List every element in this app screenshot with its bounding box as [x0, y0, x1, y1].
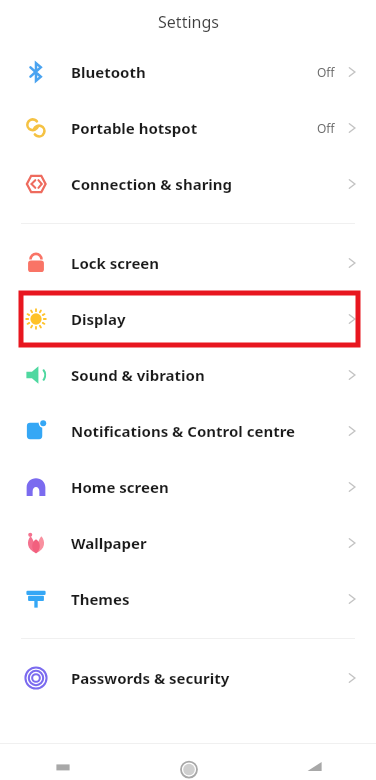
staticText: Display	[71, 309, 126, 329]
staticText: Bluetooth	[71, 62, 146, 82]
staticText: Notifications & Control centre	[71, 421, 295, 441]
button[interactable]: Bluetooth	[0, 44, 376, 100]
button[interactable]: Lock screen	[0, 235, 376, 291]
button[interactable]: Back	[251, 744, 376, 780]
button[interactable]: Home	[126, 744, 251, 780]
staticText: Connection & sharing	[71, 174, 233, 194]
button[interactable]: Recent apps	[0, 744, 126, 780]
button[interactable]: Home screen	[0, 459, 376, 515]
button[interactable]: Portable hotspot	[0, 100, 376, 156]
staticText: Sound & vibration	[71, 365, 205, 385]
button[interactable]: Passwords & security	[0, 650, 376, 706]
staticText: Wallpaper	[71, 533, 147, 553]
button[interactable]: Wallpaper	[0, 515, 376, 571]
staticText: Themes	[71, 589, 130, 609]
staticText: Portable hotspot	[71, 118, 198, 138]
staticText: Home screen	[71, 477, 169, 497]
button[interactable]: Themes	[0, 571, 376, 627]
button[interactable]: Notifications & Control centre	[0, 403, 376, 459]
staticText: Off	[317, 64, 335, 80]
staticText: Settings	[158, 11, 219, 33]
staticText: Passwords & security	[71, 668, 230, 688]
button[interactable]: Sound & vibration	[0, 347, 376, 403]
button[interactable]: Connection & sharing	[0, 156, 376, 212]
staticText: Lock screen	[71, 253, 160, 273]
button[interactable]: Display	[0, 291, 376, 347]
staticText: Off	[317, 120, 335, 136]
